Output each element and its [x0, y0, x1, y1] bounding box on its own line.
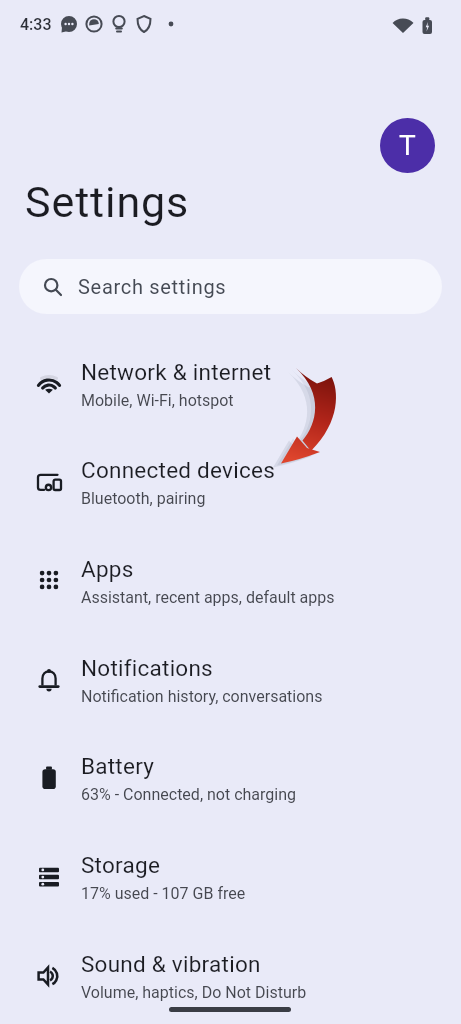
staticText: Assistant, recent apps, default apps — [81, 588, 335, 607]
staticText: Notifications — [81, 655, 213, 681]
button[interactable]: Battery — [0, 729, 461, 827]
button[interactable]: Sound & vibration — [0, 927, 461, 1024]
staticText: Connected devices — [81, 457, 276, 483]
staticText: Battery — [81, 753, 155, 779]
button[interactable]: Storage — [0, 828, 461, 926]
staticText: 63% - Connected, not charging — [81, 785, 297, 804]
staticText: Apps — [81, 556, 134, 582]
button[interactable]: Notifications — [0, 631, 461, 729]
staticText: 4:33 — [20, 15, 52, 34]
button[interactable]: Search settings — [19, 259, 442, 314]
staticText: Settings — [25, 177, 190, 227]
staticText: Storage — [81, 852, 161, 878]
staticText: Sound & vibration — [81, 951, 261, 977]
button[interactable]: Apps — [0, 532, 461, 630]
staticText: Network & internet — [81, 359, 272, 385]
staticText: Search settings — [78, 275, 227, 298]
staticText: Volume, haptics, Do Not Disturb — [81, 983, 307, 1002]
button[interactable]: T — [380, 118, 435, 173]
staticText: 17% used - 107 GB free — [81, 884, 246, 903]
staticText: Notification history, conversations — [81, 687, 323, 706]
staticText: Mobile, Wi-Fi, hotspot — [81, 391, 234, 410]
staticText: T — [399, 129, 416, 162]
button[interactable]: Connected devices — [0, 433, 461, 531]
staticText: Bluetooth, pairing — [81, 489, 206, 508]
button[interactable]: Network & internet — [0, 335, 461, 433]
